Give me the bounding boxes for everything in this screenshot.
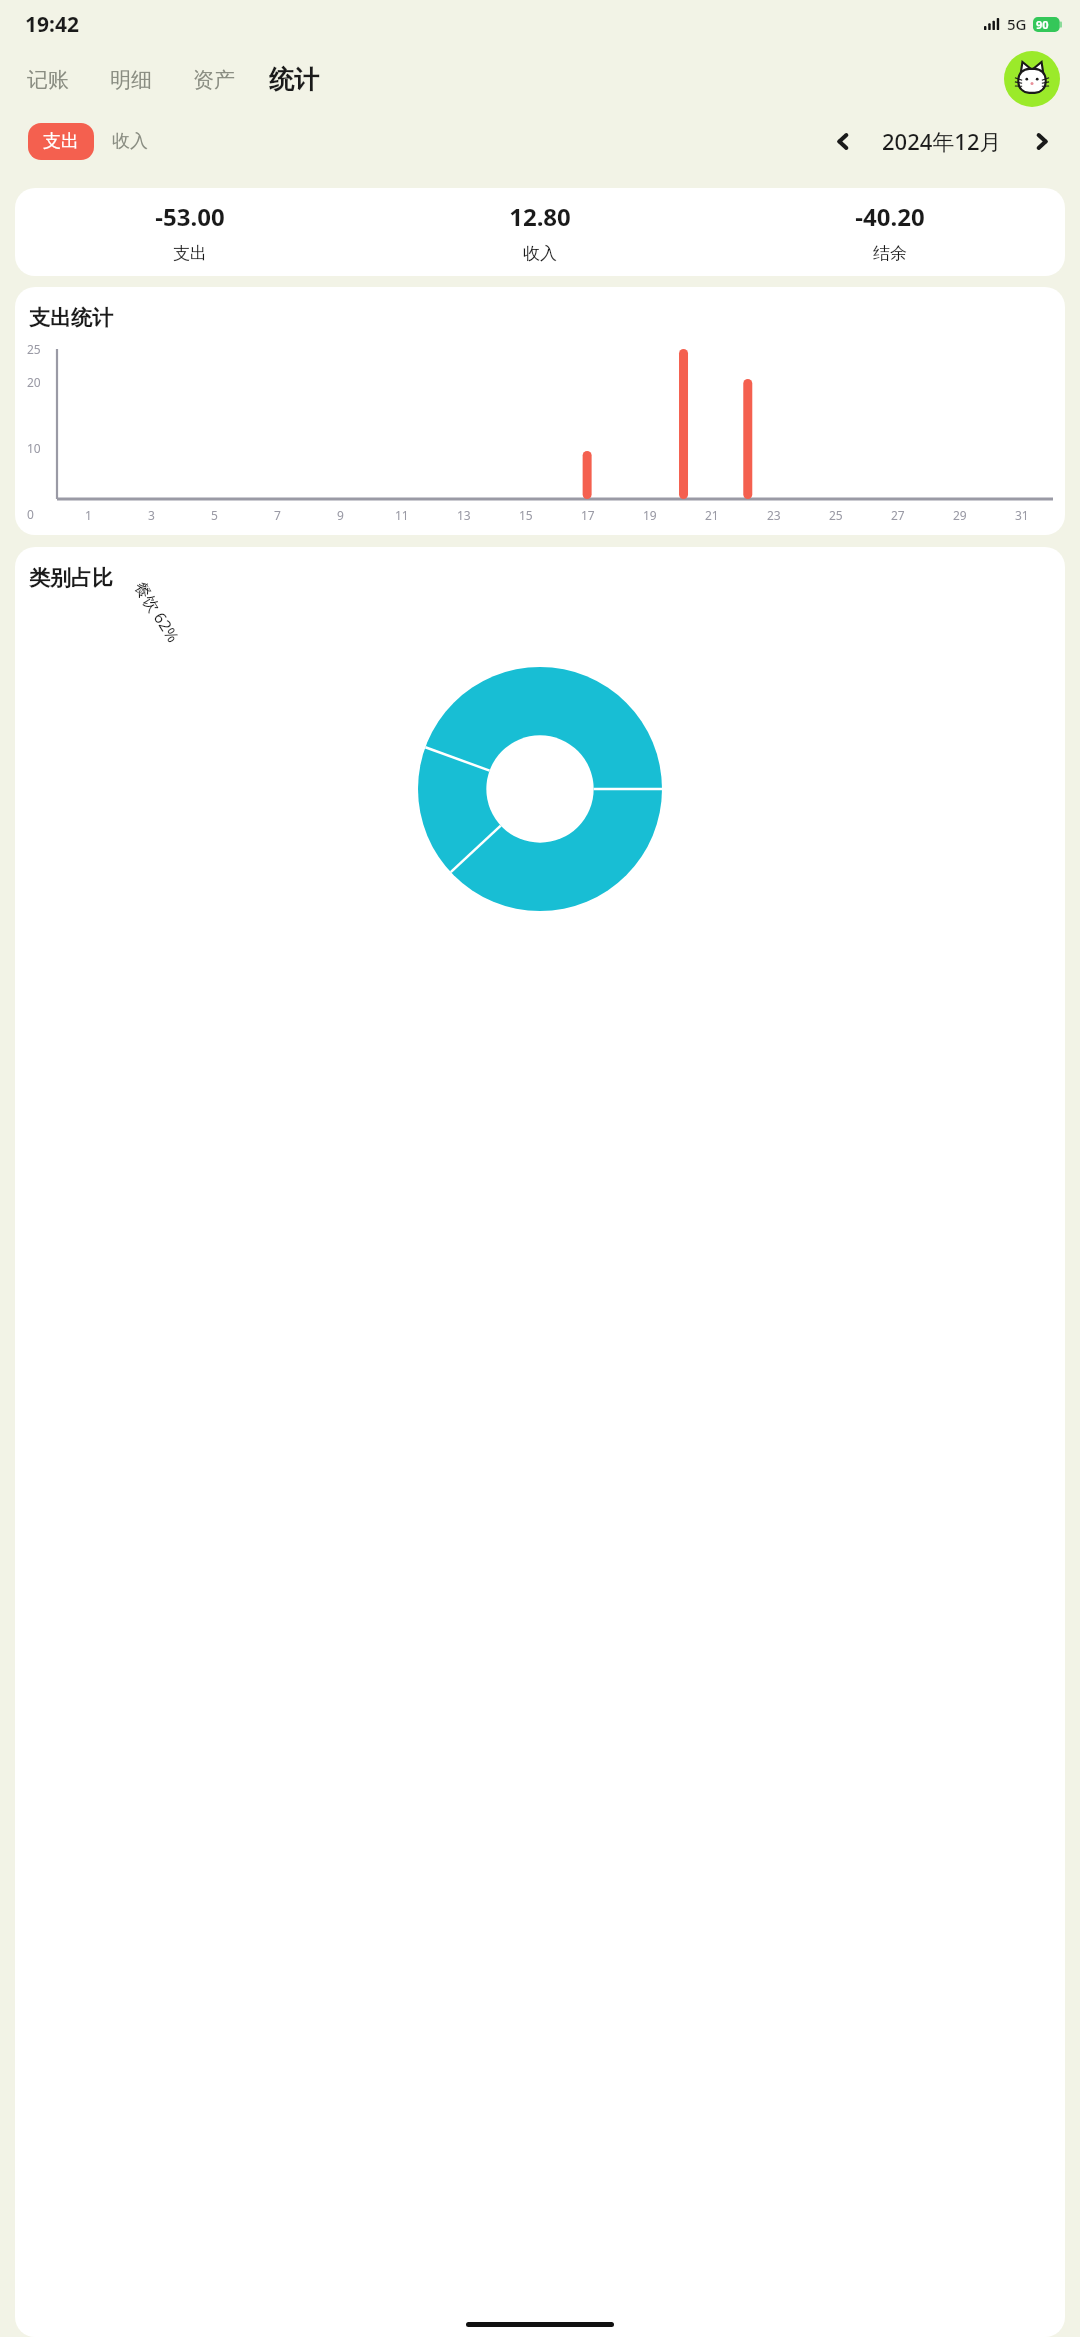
staticText: 统计 <box>269 64 319 95</box>
staticText: 25 <box>829 507 843 523</box>
staticText: 23 <box>767 507 781 523</box>
button[interactable]: 支出 <box>28 123 94 160</box>
staticText: -53.00 <box>155 200 225 233</box>
staticText: 5G <box>1007 14 1027 34</box>
staticText: 21 <box>705 507 719 523</box>
button[interactable]: 资产 <box>191 63 237 97</box>
staticText: 0 <box>27 506 34 522</box>
button[interactable]: Previous month <box>826 124 860 158</box>
button[interactable]: 统计 <box>267 60 321 99</box>
staticText: 资产 <box>193 67 235 93</box>
staticText: 31 <box>1015 507 1029 523</box>
button[interactable]: 2024年12月 <box>882 126 1002 156</box>
button[interactable]: 明细 <box>108 63 154 97</box>
staticText: 支出统计 <box>29 305 113 331</box>
staticText: 20 <box>27 374 41 390</box>
staticText: 19 <box>643 507 657 523</box>
staticText: 9 <box>337 507 344 523</box>
staticText: 收入 <box>523 243 557 264</box>
staticText: 3 <box>148 507 155 523</box>
staticText: 13 <box>457 507 471 523</box>
staticText: 5 <box>211 507 218 523</box>
staticText: 7 <box>274 507 281 523</box>
button[interactable]: -53.00 <box>15 188 1065 276</box>
button[interactable]: 支出统计 <box>15 287 1065 535</box>
staticText: 1 <box>85 507 92 523</box>
button[interactable]: Next month <box>1024 124 1058 158</box>
staticText: 记账 <box>27 67 69 93</box>
staticText: 10 <box>27 440 41 456</box>
staticText: 类别占比 <box>29 565 113 591</box>
staticText: 支出 <box>43 130 79 153</box>
staticText: 12.80 <box>509 200 571 233</box>
staticText: 11 <box>395 507 409 523</box>
staticText: -40.20 <box>855 200 925 233</box>
button[interactable]: Profile <box>1004 51 1060 107</box>
staticText: 19:42 <box>25 10 79 39</box>
button[interactable]: 类别占比 <box>15 547 1065 2337</box>
staticText: 明细 <box>110 67 152 93</box>
button[interactable]: 收入 <box>106 123 154 160</box>
staticText: 2024年12月 <box>882 126 1002 156</box>
staticText: 90 <box>1036 17 1049 32</box>
staticText: 29 <box>953 507 967 523</box>
staticText: 支出 <box>173 243 207 264</box>
staticText: 17 <box>581 507 595 523</box>
staticText: 25 <box>27 341 41 357</box>
staticText: 27 <box>891 507 905 523</box>
staticText: 收入 <box>112 130 148 153</box>
staticText: 餐饮 62% <box>130 577 184 647</box>
button[interactable]: 记账 <box>25 63 71 97</box>
staticText: 15 <box>519 507 533 523</box>
staticText: 结余 <box>873 243 907 264</box>
